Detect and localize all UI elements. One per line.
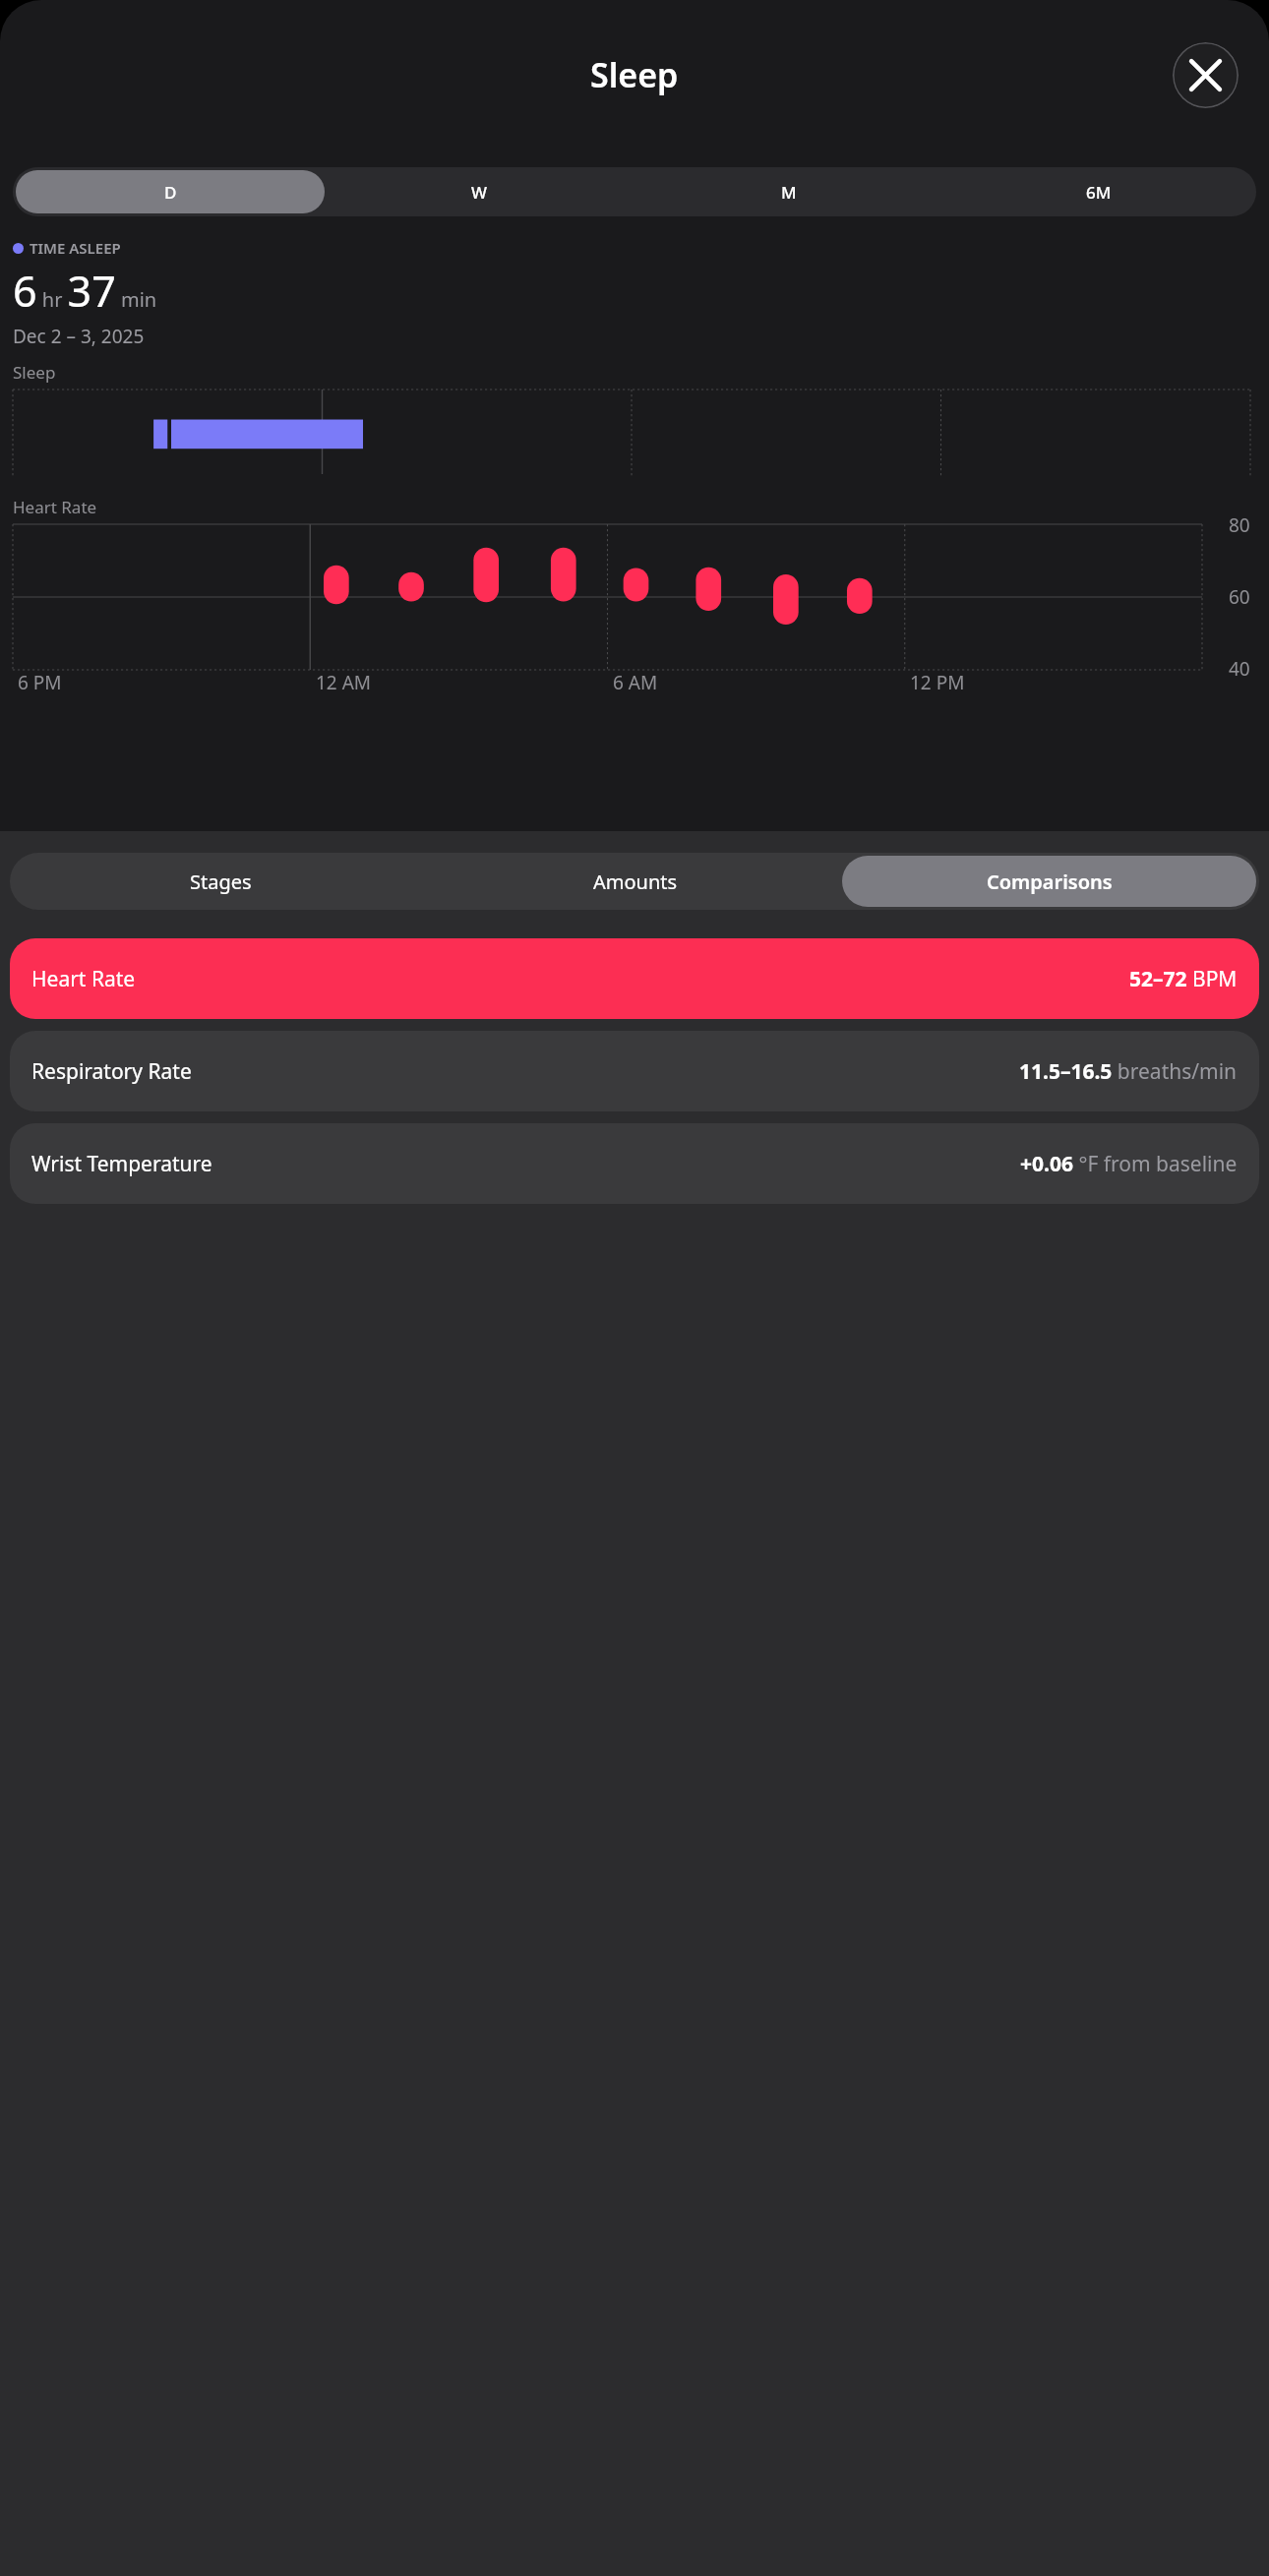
staticText: Comparisons xyxy=(987,869,1113,895)
button[interactable]: Heart Rate xyxy=(10,938,1259,1019)
staticText: 6 PM xyxy=(18,670,62,695)
staticText: W xyxy=(471,181,487,204)
button[interactable]: W xyxy=(325,170,634,213)
staticText: 40 xyxy=(1229,656,1250,682)
button[interactable]: Stages xyxy=(13,856,428,907)
staticText: 11.5–16.5 breaths/min xyxy=(1019,1057,1238,1086)
staticText: 80 xyxy=(1229,512,1250,538)
button[interactable]: 6M xyxy=(943,170,1253,213)
staticText: 12 PM xyxy=(910,670,965,695)
staticText: Stages xyxy=(190,869,252,895)
button[interactable]: Amounts xyxy=(428,856,842,907)
button[interactable]: Respiratory Rate xyxy=(10,1031,1259,1111)
staticText: Respiratory Rate xyxy=(31,1057,192,1086)
staticText: Sleep xyxy=(590,52,679,97)
staticText: Amounts xyxy=(593,869,678,895)
staticText: 12 AM xyxy=(316,670,372,695)
staticText: 6M xyxy=(1086,181,1112,204)
button[interactable]: D xyxy=(16,170,325,213)
staticText: Dec 2 – 3, 2025 xyxy=(13,324,145,349)
staticText: TIME ASLEEP xyxy=(30,238,121,258)
staticText: Heart Rate xyxy=(31,965,136,993)
staticText: 52–72 BPM xyxy=(1129,965,1238,993)
staticText: D xyxy=(164,181,177,204)
staticText: 6 AM xyxy=(613,670,658,695)
staticText: 60 xyxy=(1229,584,1250,610)
button[interactable]: Comparisons xyxy=(842,856,1256,907)
staticText: Sleep xyxy=(13,361,56,384)
staticText: M xyxy=(781,181,797,204)
staticText: +0.06 °F from baseline xyxy=(1020,1150,1238,1178)
button[interactable]: M xyxy=(634,170,943,213)
staticText: Wrist Temperature xyxy=(31,1150,212,1178)
staticText: 6 hr 37 min xyxy=(13,262,157,320)
button[interactable]: Wrist Temperature xyxy=(10,1123,1259,1204)
staticText: Heart Rate xyxy=(13,496,97,518)
button[interactable]: Close xyxy=(1173,42,1239,108)
